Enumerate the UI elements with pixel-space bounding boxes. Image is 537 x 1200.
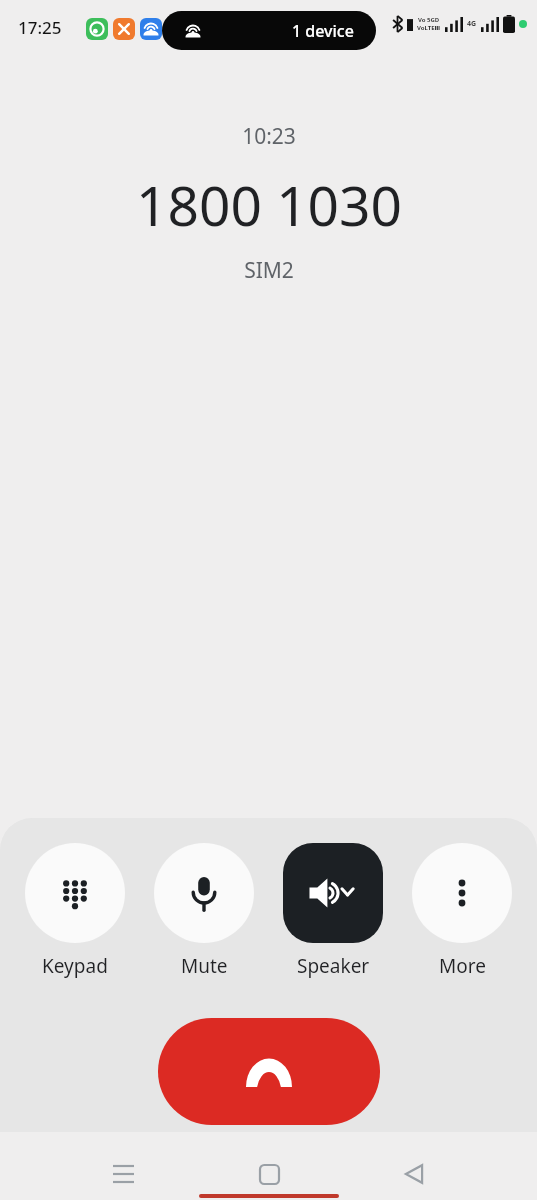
staticText: 1 device <box>292 20 354 42</box>
staticText: More <box>439 953 486 979</box>
button[interactable]: Mute <box>150 843 258 979</box>
button[interactable]: More <box>408 843 516 979</box>
staticText: Mute <box>181 953 228 979</box>
staticText: SIM2 <box>244 256 294 285</box>
staticText: 1800 1030 <box>136 167 402 242</box>
button[interactable]: Home <box>247 1152 291 1196</box>
staticText: Vo 5GD <box>418 16 440 24</box>
button[interactable]: Keypad <box>21 843 129 979</box>
staticText: Keypad <box>42 953 108 979</box>
staticText: 4G <box>467 19 477 29</box>
button[interactable]: 1 device <box>162 11 376 50</box>
button[interactable]: Speaker <box>279 843 387 979</box>
button[interactable]: End call <box>158 1018 380 1125</box>
staticText: 10:23 <box>242 122 296 151</box>
staticText: Speaker <box>297 953 370 979</box>
staticText: VoLTEⅢ <box>417 24 441 32</box>
button[interactable]: Recents <box>101 1152 145 1196</box>
staticText: 17:25 <box>18 16 62 39</box>
button[interactable]: Back <box>392 1152 436 1196</box>
